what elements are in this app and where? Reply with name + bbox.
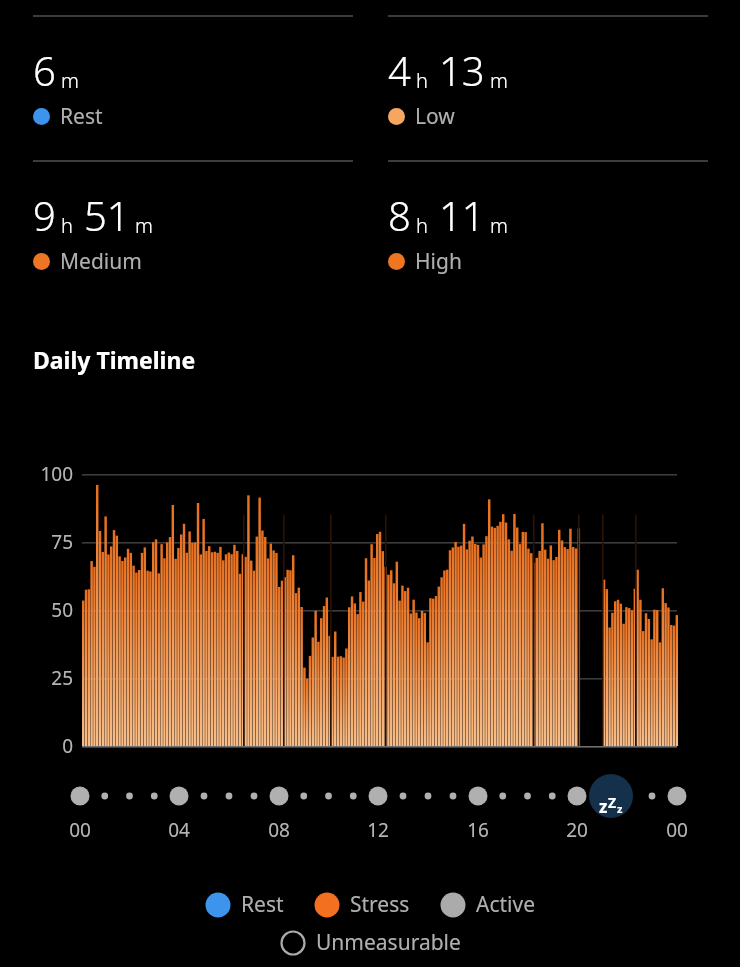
staticText: 51 — [84, 188, 130, 242]
staticText: 00 — [50, 817, 110, 843]
button[interactable]: 100 — [0, 455, 740, 765]
staticText: Stress — [350, 890, 410, 919]
staticText: 00 — [647, 817, 707, 843]
staticText: 13 — [439, 43, 485, 97]
staticText: 16 — [448, 817, 508, 843]
staticText: Rest — [241, 890, 284, 919]
button[interactable]: Sleep period — [589, 784, 633, 828]
button[interactable]: Stress — [314, 890, 410, 919]
staticText: Z — [608, 793, 617, 812]
staticText: Rest — [60, 102, 103, 131]
staticText: h — [416, 67, 428, 94]
staticText: 11 — [439, 188, 485, 242]
staticText: Medium — [60, 247, 142, 276]
staticText: 04 — [149, 817, 209, 843]
staticText: 20 — [547, 817, 607, 843]
button[interactable]: 9 — [33, 160, 353, 300]
button[interactable]: 8 — [388, 160, 708, 300]
button[interactable]: Active — [440, 890, 536, 919]
staticText: h — [61, 212, 73, 239]
staticText: m — [135, 212, 153, 239]
staticText: 75 — [0, 529, 73, 555]
staticText: m — [61, 67, 79, 94]
staticText: Low — [415, 102, 455, 131]
staticText: m — [490, 212, 508, 239]
button[interactable]: Sleep period — [0, 770, 740, 840]
staticText: High — [415, 247, 462, 276]
staticText: Daily Timeline — [33, 344, 196, 375]
staticText: 100 — [0, 461, 73, 487]
staticText: 4 — [388, 43, 411, 97]
button[interactable]: 4 — [388, 15, 708, 155]
staticText: 25 — [0, 665, 73, 691]
button[interactable]: Rest — [205, 890, 284, 919]
staticText: h — [416, 212, 428, 239]
staticText: Active — [476, 890, 536, 919]
staticText: 6 — [33, 43, 56, 97]
staticText: m — [490, 67, 508, 94]
staticText: 08 — [249, 817, 309, 843]
button[interactable]: Unmeasurable — [280, 928, 461, 957]
staticText: Unmeasurable — [316, 928, 461, 957]
staticText: 50 — [0, 597, 73, 623]
staticText: 9 — [33, 188, 56, 242]
button[interactable]: 6 — [33, 15, 353, 155]
staticText: 8 — [388, 188, 411, 242]
staticText: 0 — [0, 733, 73, 759]
staticText: 12 — [348, 817, 408, 843]
staticText: z — [599, 795, 608, 818]
button[interactable]: Daily Timeline — [33, 344, 196, 375]
staticText: z — [617, 801, 623, 816]
